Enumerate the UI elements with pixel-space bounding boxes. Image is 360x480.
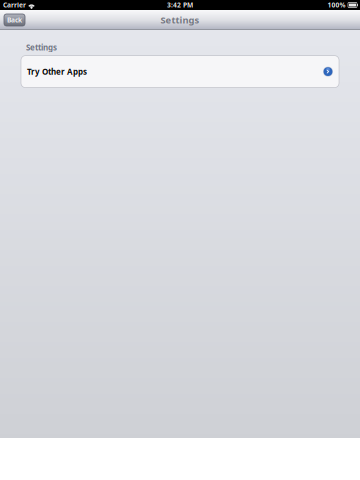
staticText: Back (7, 16, 22, 24)
staticText: Try Other Apps (27, 66, 87, 77)
staticText: 100% (327, 1, 345, 9)
staticText: Settings (26, 42, 57, 53)
button[interactable]: Try Other Apps (21, 56, 339, 88)
staticText: Settings (160, 14, 199, 26)
staticText: Carrier (3, 1, 26, 9)
staticText: 3:42 PM (167, 1, 193, 9)
button[interactable]: Back (4, 14, 25, 26)
